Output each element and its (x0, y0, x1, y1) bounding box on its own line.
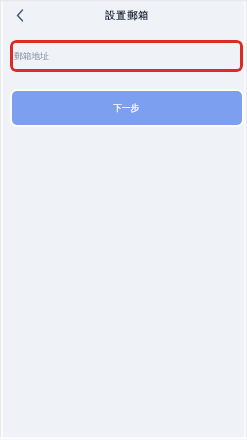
staticText: 設置郵箱 (105, 9, 150, 22)
button[interactable]: Back (9, 2, 31, 28)
staticText: 下一步 (113, 103, 140, 114)
button[interactable]: 下一步 (12, 91, 242, 125)
button[interactable]: 郵箱地址 (10, 40, 243, 72)
staticText: 郵箱地址 (14, 51, 49, 62)
